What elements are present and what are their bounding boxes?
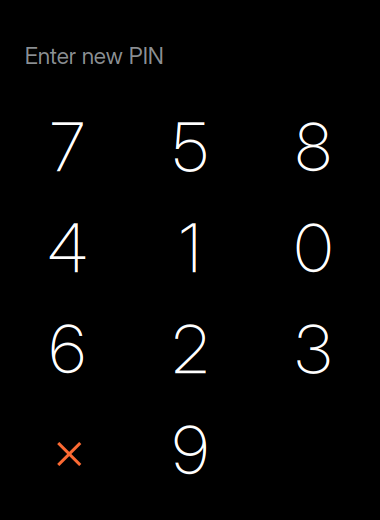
staticText: 6 bbox=[49, 309, 85, 389]
staticText: 1 bbox=[179, 208, 201, 288]
button[interactable]: 5 bbox=[134, 104, 246, 190]
button[interactable]: 7 bbox=[11, 104, 123, 190]
button[interactable]: 2 bbox=[134, 306, 246, 392]
button[interactable]: 9 bbox=[134, 407, 246, 493]
staticText: 9 bbox=[172, 410, 208, 490]
button[interactable]: 6 bbox=[11, 306, 123, 392]
button[interactable]: 1 bbox=[134, 205, 246, 291]
staticText: Enter new PIN bbox=[25, 42, 164, 69]
staticText: 2 bbox=[172, 309, 208, 389]
button[interactable]: 8 bbox=[257, 104, 369, 190]
staticText: 8 bbox=[295, 107, 331, 187]
button[interactable]: 4 bbox=[11, 205, 123, 291]
staticText: 3 bbox=[295, 309, 332, 389]
staticText: 0 bbox=[294, 208, 332, 288]
button[interactable]: Delete bbox=[11, 407, 123, 493]
staticText: 7 bbox=[50, 107, 84, 187]
button[interactable]: 3 bbox=[257, 306, 369, 392]
staticText: 4 bbox=[48, 208, 87, 288]
button[interactable]: 0 bbox=[257, 205, 369, 291]
staticText: 5 bbox=[173, 107, 208, 187]
